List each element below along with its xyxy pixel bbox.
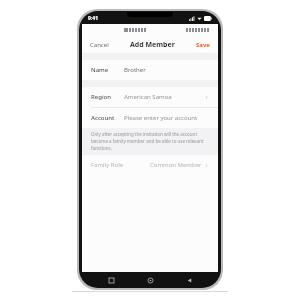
staticText: Add Member [130, 40, 175, 50]
button[interactable]: Cancel [89, 39, 110, 51]
staticText: Please enter your account [124, 114, 198, 122]
staticText: Brother [124, 66, 146, 74]
staticText: Region [91, 93, 112, 101]
staticText: Name [91, 66, 109, 74]
staticText: Save [196, 41, 210, 49]
staticText: Family Role [91, 161, 124, 169]
staticText: Common Member [150, 161, 202, 169]
staticText: Only after accepting the invitation will… [91, 131, 209, 137]
button[interactable]: Name [82, 60, 218, 80]
staticText: American Samoa [124, 93, 172, 101]
button[interactable]: Recent apps [106, 275, 117, 286]
button[interactable]: Save [195, 39, 211, 51]
staticText: Cancel [90, 41, 109, 49]
button[interactable]: Account [82, 108, 218, 128]
button[interactable]: Back [184, 275, 195, 286]
staticText: functions. [91, 145, 112, 151]
button[interactable]: Region [82, 87, 218, 107]
staticText: 9:41 [88, 15, 98, 22]
button[interactable]: Home [145, 275, 156, 286]
staticText: Account [91, 114, 115, 122]
staticText: become a family member and be able to us… [91, 138, 204, 144]
button[interactable]: Family Role [82, 155, 218, 175]
